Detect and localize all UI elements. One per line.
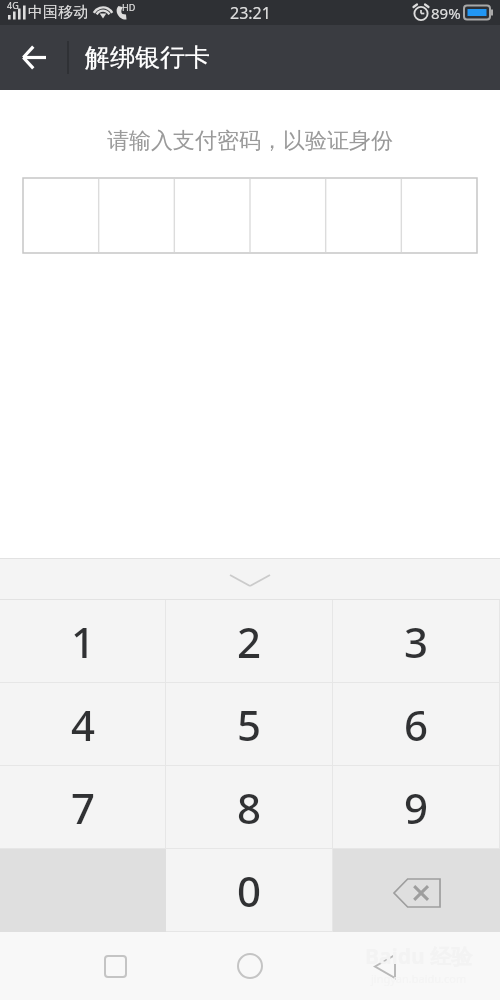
staticText: 7: [71, 779, 96, 836]
staticText: jingyan.baidu.com: [371, 971, 467, 986]
button[interactable]: 4: [0, 683, 166, 766]
staticText: 8: [237, 779, 262, 836]
staticText: 6: [404, 696, 429, 753]
button[interactable]: Home: [210, 932, 290, 1000]
button[interactable]: Hide keyboard: [0, 558, 500, 600]
staticText: 4G: [7, 0, 19, 11]
staticText: 23:21: [230, 2, 271, 24]
staticText: 中国移动: [28, 3, 88, 22]
button[interactable]: Back: [345, 932, 425, 1000]
staticText: HD: [122, 1, 136, 13]
button[interactable]: 3: [333, 600, 500, 683]
button[interactable]: Recents: [75, 932, 155, 1000]
staticText: 5: [237, 696, 262, 753]
staticText: 请输入支付密码，以验证身份: [0, 127, 500, 155]
button[interactable]: 9: [333, 766, 500, 849]
button[interactable]: Back: [0, 25, 67, 90]
button[interactable]: 5: [166, 683, 333, 766]
staticText: 4: [71, 696, 96, 753]
staticText: Baidu 经验: [365, 942, 473, 971]
staticText: 2: [237, 613, 262, 670]
staticText: 9: [404, 779, 429, 836]
button[interactable]: 6: [333, 683, 500, 766]
staticText: 1: [71, 613, 96, 670]
staticText: 解绑银行卡: [85, 42, 210, 73]
button[interactable]: 0: [166, 849, 333, 932]
button[interactable]: 1: [0, 600, 166, 683]
button[interactable]: 8: [166, 766, 333, 849]
staticText: 0: [237, 862, 262, 919]
staticText: 89%: [431, 3, 461, 23]
button[interactable]: 7: [0, 766, 166, 849]
staticText: 3: [404, 613, 429, 670]
button[interactable]: 2: [166, 600, 333, 683]
button[interactable]: Backspace: [333, 849, 500, 932]
